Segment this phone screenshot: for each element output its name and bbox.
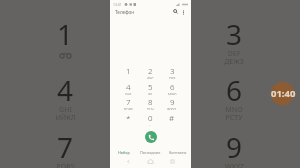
- staticText: DEF: [169, 76, 176, 79]
- staticText: 1: [126, 65, 131, 76]
- staticText: 7: [57, 128, 74, 158]
- button[interactable]: 0: [139, 112, 161, 126]
- staticText: ABC: [147, 76, 154, 79]
- button[interactable]: *: [118, 112, 139, 126]
- staticText: Последние: [140, 150, 161, 155]
- button[interactable]: 2: [139, 65, 161, 79]
- staticText: 1: [57, 15, 74, 45]
- staticText: MNO: [168, 92, 177, 95]
- staticText: 9: [226, 128, 243, 158]
- button[interactable]: 4: [118, 81, 139, 95]
- button[interactable]: 6: [161, 81, 183, 95]
- button[interactable]: Duration 01:40: [271, 82, 294, 105]
- staticText: PQRS МНОП: [54, 162, 77, 168]
- button[interactable]: Набор: [110, 147, 137, 157]
- staticText: WXYZ ЧШЩЪ: [222, 162, 247, 168]
- button[interactable]: More options: [179, 8, 187, 16]
- staticText: 13:41: [113, 2, 122, 7]
- staticText: 5: [148, 81, 153, 92]
- staticText: 2: [148, 65, 153, 76]
- button[interactable]: Контакты: [164, 147, 191, 157]
- staticText: PQRS: [124, 107, 133, 110]
- button[interactable]: 1: [118, 65, 139, 79]
- staticText: 9: [170, 96, 175, 107]
- button[interactable]: 9: [161, 96, 183, 110]
- staticText: 8: [148, 96, 153, 107]
- button[interactable]: #: [161, 112, 183, 126]
- staticText: 6: [226, 71, 243, 101]
- staticText: GHI: [125, 92, 132, 95]
- staticText: +: [149, 123, 152, 126]
- staticText: JKL: [148, 92, 153, 95]
- staticText: 0: [148, 112, 153, 123]
- staticText: 3: [170, 65, 175, 76]
- button[interactable]: Back: [125, 158, 132, 165]
- button[interactable]: 3: [161, 65, 183, 79]
- staticText: TUV: [147, 107, 154, 110]
- staticText: DEF ДЕЖЗ: [224, 49, 244, 66]
- button[interactable]: 7: [118, 96, 139, 110]
- button[interactable]: Recents: [169, 158, 176, 165]
- staticText: #: [169, 112, 175, 123]
- button[interactable]: Search: [172, 8, 179, 15]
- staticText: 6: [170, 81, 175, 92]
- button[interactable]: Последние: [137, 147, 164, 157]
- staticText: Контакты: [169, 150, 187, 155]
- staticText: 3: [226, 15, 243, 45]
- staticText: GHI ИЙКЛ: [55, 105, 76, 122]
- staticText: Телефон: [115, 9, 135, 15]
- staticText: 4: [57, 71, 74, 101]
- staticText: Набор: [118, 150, 130, 155]
- button[interactable]: Home: [147, 158, 154, 165]
- button[interactable]: Call: [145, 131, 157, 143]
- staticText: 01:40: [271, 87, 296, 98]
- staticText: MNO РСТУ: [225, 105, 243, 122]
- button[interactable]: 5: [139, 81, 161, 95]
- staticText: 4: [126, 81, 131, 92]
- staticText: *: [126, 112, 131, 123]
- staticText: WXYZ: [167, 107, 177, 110]
- button[interactable]: 8: [139, 96, 161, 110]
- staticText: 7: [126, 96, 131, 107]
